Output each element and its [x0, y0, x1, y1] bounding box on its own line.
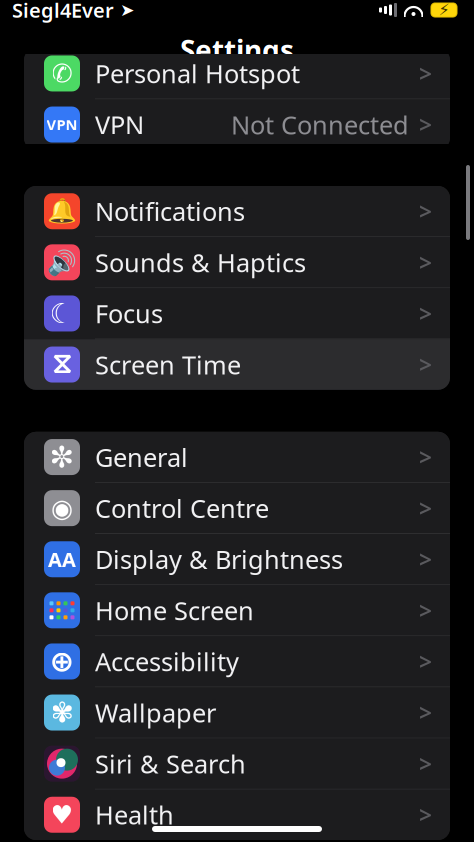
staticText: >: [419, 749, 432, 779]
staticText: Screen Time: [95, 348, 241, 381]
button[interactable]: ✾: [24, 687, 450, 738]
staticText: 🔔: [47, 197, 77, 225]
button[interactable]: ♥: [24, 789, 450, 840]
button[interactable]: ✼: [24, 432, 450, 482]
staticText: VPN: [95, 108, 144, 141]
staticText: ♥: [50, 800, 73, 829]
staticText: >: [419, 298, 432, 328]
staticText: Wallpaper: [95, 696, 216, 729]
staticText: Sounds & Haptics: [95, 245, 306, 279]
staticText: Home Screen: [95, 593, 254, 627]
staticText: >: [419, 800, 432, 830]
button[interactable]: ⧖: [24, 339, 450, 390]
staticText: Settings: [180, 31, 294, 69]
button[interactable]: ⊕: [24, 636, 450, 687]
staticText: ⧖: [52, 351, 72, 378]
staticText: Not Connected: [231, 108, 409, 141]
staticText: AA: [48, 546, 76, 573]
staticText: Focus: [95, 297, 163, 330]
button[interactable]: Siri & Search: [24, 738, 450, 789]
staticText: >: [419, 442, 432, 472]
staticText: ⚡︎: [438, 1, 449, 19]
button[interactable]: AA: [24, 534, 450, 584]
staticText: >: [419, 646, 432, 676]
button[interactable]: ✆: [24, 48, 450, 99]
staticText: Health: [95, 798, 174, 831]
staticText: >: [419, 493, 432, 523]
staticText: VPN: [46, 115, 77, 134]
staticText: Personal Hotspot: [95, 57, 300, 90]
staticText: Display & Brightness: [95, 542, 343, 576]
staticText: ✼: [49, 440, 74, 474]
button[interactable]: ◉: [24, 483, 450, 533]
button[interactable]: 🔊: [24, 237, 450, 288]
staticText: >: [419, 595, 432, 625]
staticText: Siri & Search: [95, 747, 246, 780]
staticText: General: [95, 440, 188, 474]
staticText: ☾: [49, 298, 74, 329]
staticText: >: [419, 109, 432, 140]
staticText: >: [419, 544, 432, 574]
staticText: 🔊: [47, 249, 77, 276]
staticText: ➤: [120, 0, 135, 20]
staticText: ⊕: [49, 645, 74, 678]
button[interactable]: Home Screen: [24, 585, 450, 636]
staticText: >: [419, 349, 432, 380]
button[interactable]: VPN: [24, 99, 450, 150]
staticText: >: [419, 697, 432, 728]
button[interactable]: ☾: [24, 288, 450, 339]
staticText: Notifications: [95, 194, 245, 228]
button[interactable]: 🔔: [24, 186, 450, 236]
staticText: ◉: [51, 494, 73, 523]
staticText: Control Centre: [95, 491, 269, 525]
staticText: >: [419, 58, 432, 88]
staticText: >: [419, 247, 432, 277]
staticText: ✾: [50, 697, 73, 728]
staticText: Accessibility: [95, 645, 239, 678]
staticText: Siegl4Ever: [12, 0, 114, 23]
staticText: ✆: [51, 59, 72, 88]
staticText: >: [419, 196, 432, 226]
